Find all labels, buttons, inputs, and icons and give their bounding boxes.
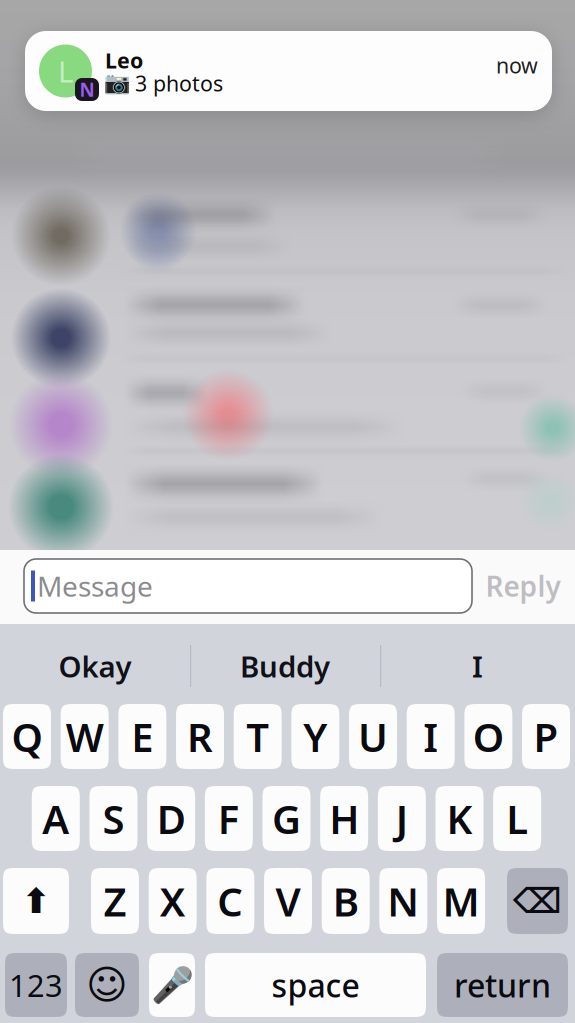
staticText: F — [218, 792, 240, 845]
button[interactable]: Numbers — [5, 953, 67, 1017]
button[interactable]: A — [32, 786, 80, 851]
staticText: ⌫ — [513, 881, 562, 921]
button[interactable]: I — [407, 704, 455, 769]
button[interactable]: Message — [24, 559, 472, 613]
button[interactable]: Q — [3, 704, 51, 769]
staticText: K — [446, 792, 472, 845]
staticText: ⬆ — [21, 881, 50, 921]
button[interactable]: D — [147, 786, 195, 851]
button[interactable]: Buddy — [190, 630, 380, 702]
staticText: L — [506, 792, 528, 845]
staticText: J — [396, 792, 408, 845]
button[interactable]: K — [435, 786, 483, 851]
staticText: P — [533, 710, 558, 763]
staticText: L — [58, 51, 73, 90]
staticText: E — [131, 710, 153, 763]
staticText: Q — [11, 710, 42, 763]
staticText: 123 — [9, 965, 63, 1005]
button[interactable]: Y — [291, 704, 339, 769]
button[interactable]: Dictate — [149, 953, 195, 1017]
staticText: Leo — [105, 46, 143, 74]
staticText: R — [187, 710, 213, 763]
staticText: now — [496, 51, 538, 79]
button[interactable]: F — [205, 786, 253, 851]
button[interactable]: T — [234, 704, 282, 769]
staticText: Y — [303, 710, 327, 763]
staticText: O — [473, 710, 504, 763]
staticText: 3 photos — [135, 69, 223, 97]
staticText: Buddy — [240, 646, 330, 685]
staticText: H — [329, 792, 359, 845]
button[interactable]: X — [149, 868, 197, 934]
staticText: I — [423, 710, 438, 763]
staticText: Okay — [58, 646, 131, 685]
button[interactable]: H — [320, 786, 368, 851]
staticText: N — [387, 874, 419, 927]
staticText: space — [271, 964, 359, 1006]
button[interactable]: I — [380, 630, 575, 702]
button[interactable]: W — [61, 704, 109, 769]
staticText: Message — [37, 567, 153, 605]
button[interactable]: return — [437, 953, 568, 1017]
staticText: Z — [103, 874, 126, 927]
button[interactable]: Shift — [3, 868, 69, 934]
staticText: T — [246, 710, 269, 763]
staticText: B — [333, 874, 359, 927]
staticText: G — [272, 792, 301, 845]
button[interactable]: space — [205, 953, 426, 1017]
staticText: N — [79, 77, 94, 102]
button[interactable]: Reply — [484, 566, 562, 606]
button[interactable]: Z — [91, 868, 139, 934]
button[interactable]: P — [522, 704, 570, 769]
button[interactable]: B — [322, 868, 370, 934]
button[interactable]: O — [464, 704, 512, 769]
button[interactable]: C — [206, 868, 254, 934]
staticText: M — [442, 874, 479, 927]
button[interactable]: Okay — [0, 630, 190, 702]
button[interactable]: U — [349, 704, 397, 769]
button[interactable]: E — [118, 704, 166, 769]
button[interactable]: L — [25, 31, 552, 111]
staticText: U — [358, 710, 388, 763]
button[interactable]: V — [264, 868, 312, 934]
staticText: 🎤 — [150, 965, 193, 1005]
staticText: 📷 — [104, 71, 131, 95]
button[interactable]: Delete — [507, 868, 568, 934]
staticText: return — [454, 964, 551, 1006]
button[interactable]: J — [378, 786, 426, 851]
staticText: W — [66, 710, 104, 763]
button[interactable]: L — [493, 786, 541, 851]
staticText: D — [157, 792, 186, 845]
button[interactable]: N — [379, 868, 427, 934]
button[interactable]: Emoji — [75, 953, 139, 1017]
staticText: A — [42, 792, 69, 845]
staticText: Reply — [485, 567, 560, 605]
staticText: ☺ — [86, 962, 128, 1008]
staticText: V — [275, 874, 300, 927]
button[interactable]: G — [262, 786, 310, 851]
button[interactable]: R — [176, 704, 224, 769]
button[interactable]: M — [437, 868, 485, 934]
staticText: S — [102, 792, 124, 845]
staticText: X — [160, 874, 186, 927]
staticText: I — [472, 646, 483, 685]
button[interactable]: S — [89, 786, 137, 851]
staticText: C — [217, 874, 243, 927]
